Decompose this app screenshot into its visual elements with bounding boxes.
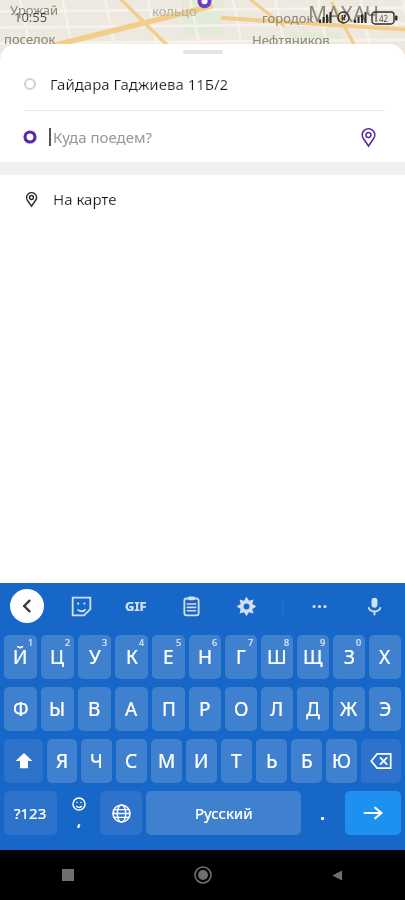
- button[interactable]: Я: [47, 739, 77, 783]
- staticText: В: [88, 696, 101, 722]
- staticText: К: [126, 644, 138, 670]
- staticText: Я: [56, 748, 69, 774]
- button[interactable]: И: [186, 739, 217, 783]
- staticText: Урожай: [10, 1, 59, 19]
- button[interactable]: Выбрать на карте: [351, 120, 385, 154]
- staticText: 8: [284, 636, 290, 648]
- button[interactable]: Голосовой ввод: [355, 587, 393, 625]
- button[interactable]: Главный экран: [135, 850, 270, 900]
- staticText: Н: [198, 644, 213, 670]
- button[interactable]: Й: [4, 635, 37, 679]
- staticText: 0: [356, 636, 362, 648]
- staticText: Ы: [49, 696, 66, 722]
- staticText: З: [344, 644, 355, 670]
- staticText: 4: [139, 636, 145, 648]
- button[interactable]: Стикеры: [62, 587, 100, 625]
- button[interactable]: У: [78, 635, 111, 679]
- button[interactable]: Ш: [261, 635, 293, 679]
- button[interactable]: Настройки: [227, 587, 265, 625]
- button[interactable]: Ввод: [345, 791, 401, 835]
- button[interactable]: В: [78, 687, 111, 731]
- button[interactable]: Ю: [326, 739, 357, 783]
- staticText: Б: [301, 748, 313, 774]
- button[interactable]: Буфер обмена: [172, 587, 210, 625]
- staticText: О: [234, 696, 249, 722]
- staticText: Е: [163, 644, 174, 670]
- button[interactable]: Н: [189, 635, 221, 679]
- button[interactable]: Щ: [297, 635, 329, 679]
- staticText: .: [320, 801, 326, 826]
- staticText: 7: [248, 636, 254, 648]
- staticText: Ч: [90, 748, 103, 774]
- button[interactable]: Shift: [4, 739, 43, 783]
- staticText: 42: [379, 13, 389, 24]
- button[interactable]: Г: [225, 635, 257, 679]
- button[interactable]: Ж: [333, 687, 365, 731]
- staticText: С: [125, 748, 138, 774]
- staticText: городок: [262, 9, 314, 27]
- button[interactable]: Эмодзи: [61, 791, 96, 835]
- staticText: Ф: [13, 696, 29, 722]
- button[interactable]: Гайдара Гаджиева 11Б/2: [0, 58, 405, 110]
- staticText: 2: [65, 636, 71, 648]
- button[interactable]: GIF: [117, 587, 155, 625]
- button[interactable]: ?123: [4, 791, 57, 835]
- staticText: Л: [270, 696, 284, 722]
- button[interactable]: Б: [291, 739, 322, 783]
- staticText: Э: [379, 696, 392, 722]
- button[interactable]: Ы: [41, 687, 74, 731]
- button[interactable]: М: [151, 739, 182, 783]
- staticText: кольцо: [152, 2, 197, 20]
- staticText: Нефтяников: [252, 31, 330, 49]
- button[interactable]: Недавние приложения: [0, 850, 135, 900]
- staticText: Р: [199, 696, 211, 722]
- staticText: поселок: [4, 30, 56, 48]
- staticText: А: [125, 696, 138, 722]
- button[interactable]: Л: [261, 687, 293, 731]
- button[interactable]: Удалить: [361, 739, 401, 783]
- button[interactable]: С: [116, 739, 147, 783]
- button[interactable]: Русский: [146, 791, 301, 835]
- button[interactable]: Д: [297, 687, 329, 731]
- staticText: Гайдара Гаджиева 11Б/2: [50, 74, 229, 94]
- button[interactable]: А: [115, 687, 148, 731]
- button[interactable]: Куда поедем?: [0, 111, 405, 162]
- staticText: GIF: [125, 597, 147, 615]
- staticText: МАХАЧ: [308, 0, 380, 29]
- button[interactable]: Х: [369, 635, 401, 679]
- button[interactable]: На карте: [0, 175, 405, 223]
- button[interactable]: .: [305, 791, 341, 835]
- staticText: 1: [28, 636, 34, 648]
- button[interactable]: Р: [189, 687, 221, 731]
- button[interactable]: Ь: [256, 739, 287, 783]
- staticText: 6: [212, 636, 218, 648]
- button[interactable]: Назад: [270, 850, 405, 900]
- button[interactable]: Сменить язык: [100, 791, 142, 835]
- button[interactable]: О: [225, 687, 257, 731]
- button[interactable]: Ц: [41, 635, 74, 679]
- button[interactable]: Ещё: [300, 587, 338, 625]
- staticText: Д: [306, 696, 320, 722]
- staticText: Ю: [332, 748, 351, 774]
- staticText: ?123: [14, 803, 47, 823]
- staticText: Т: [231, 748, 242, 774]
- staticText: На карте: [53, 189, 117, 209]
- staticText: Ш: [267, 644, 287, 670]
- button[interactable]: Назад: [10, 589, 44, 623]
- staticText: М: [158, 748, 176, 774]
- button[interactable]: Е: [152, 635, 185, 679]
- staticText: Ь: [266, 748, 278, 774]
- staticText: Х: [379, 644, 391, 670]
- staticText: П: [162, 696, 176, 722]
- button[interactable]: Т: [221, 739, 252, 783]
- button[interactable]: Ф: [4, 687, 37, 731]
- staticText: Й: [13, 644, 28, 670]
- button[interactable]: З: [333, 635, 365, 679]
- button[interactable]: К: [115, 635, 148, 679]
- staticText: Куда поедем?: [53, 127, 351, 147]
- staticText: 3: [102, 636, 108, 648]
- staticText: У: [89, 644, 101, 670]
- button[interactable]: Ч: [81, 739, 112, 783]
- button[interactable]: П: [152, 687, 185, 731]
- button[interactable]: Э: [369, 687, 401, 731]
